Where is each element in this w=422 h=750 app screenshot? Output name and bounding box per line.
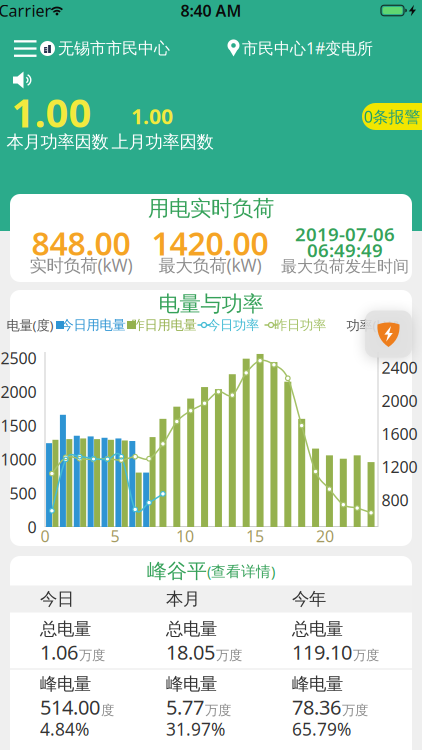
staticText: 15	[246, 525, 264, 547]
staticText: 市民中心1#变电所	[242, 37, 373, 59]
staticText: 0	[40, 525, 49, 547]
staticText: 1000	[0, 449, 36, 470]
staticText: 1600	[381, 423, 417, 444]
staticText: 昨日功率	[274, 317, 326, 333]
staticText: 800	[381, 489, 408, 511]
staticText: 4.84%	[40, 717, 89, 740]
staticText: 514.00	[40, 694, 100, 720]
staticText: 1500	[0, 415, 36, 436]
staticText: 万度	[353, 647, 379, 663]
staticText: 万度	[342, 702, 368, 718]
staticText: 总电量	[292, 618, 343, 640]
staticText: 用电实时负荷	[148, 195, 274, 222]
staticText: 昨日用电量	[131, 317, 196, 333]
staticText: 2019-07-06	[295, 222, 395, 246]
staticText: 本月功率因数	[6, 131, 108, 153]
staticText: 峰谷平	[147, 559, 207, 583]
staticText: 1.00	[131, 102, 173, 130]
staticText: 今日用电量	[60, 317, 125, 333]
staticText: 今日	[40, 588, 74, 610]
staticText: 1420.00	[151, 222, 268, 264]
staticText: 848.00	[31, 222, 130, 264]
staticText: 06:49:49	[307, 238, 383, 262]
staticText: 今年	[292, 588, 326, 610]
staticText: 2400	[381, 357, 417, 378]
staticText: 10	[176, 525, 194, 547]
staticText: 度	[101, 702, 114, 718]
staticText: 本月	[166, 588, 200, 610]
button[interactable]: 峰谷平	[147, 559, 275, 583]
staticText: 最大负荷发生时间	[281, 257, 409, 276]
staticText: 总电量	[40, 618, 91, 640]
staticText: 万度	[205, 702, 231, 718]
staticText: 0	[27, 516, 36, 538]
button[interactable]: 市民中心1#变电所	[227, 37, 373, 59]
staticText: 功率(kW)	[346, 316, 399, 334]
button[interactable]: 无锡市市民中心	[40, 39, 170, 58]
staticText: Carrier	[0, 0, 51, 21]
staticText: 8:40 AM	[180, 0, 241, 21]
staticText: 峰电量	[292, 673, 343, 695]
staticText: 电量与功率	[158, 291, 263, 317]
staticText: 2000	[381, 390, 417, 411]
staticText: 500	[9, 483, 36, 504]
staticText: 上月功率因数	[111, 131, 213, 153]
staticText: (查看详情)	[207, 561, 275, 581]
staticText: 万度	[79, 647, 105, 663]
staticText: 无锡市市民中心	[58, 39, 170, 58]
button[interactable]	[13, 71, 31, 88]
staticText: 最大负荷(kW)	[158, 253, 261, 276]
staticText: 5.77	[166, 694, 204, 720]
staticText: 电量(度)	[6, 316, 53, 334]
staticText: 65.79%	[292, 717, 351, 740]
button[interactable]: 0条报警	[362, 103, 422, 130]
button[interactable]	[14, 40, 36, 57]
staticText: 78.36	[292, 694, 341, 720]
staticText: 31.97%	[166, 717, 225, 740]
button[interactable]	[365, 310, 412, 357]
staticText: 119.10	[292, 639, 352, 665]
staticText: 2500	[0, 347, 36, 369]
staticText: 总电量	[166, 618, 217, 640]
staticText: 峰电量	[40, 673, 91, 695]
staticText: 1.06	[40, 639, 78, 665]
staticText: 18.05	[166, 639, 215, 665]
staticText: 1.00	[11, 85, 91, 138]
staticText: 20	[316, 525, 334, 547]
staticText: 万度	[216, 647, 242, 663]
staticText: 峰电量	[166, 673, 217, 695]
staticText: 今日功率	[207, 317, 259, 333]
staticText: 1200	[381, 456, 417, 477]
staticText: 实时负荷(kW)	[29, 253, 132, 276]
staticText: 0条报警	[363, 106, 420, 127]
staticText: 5	[110, 525, 119, 547]
staticText: 2000	[0, 381, 36, 402]
